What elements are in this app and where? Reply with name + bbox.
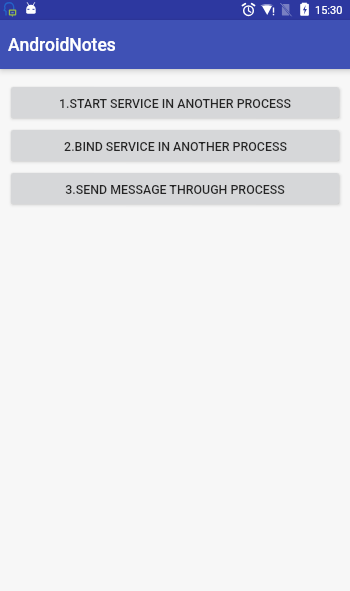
staticText: 1.START SERVICE IN ANOTHER PROCESS [59,96,291,111]
button[interactable]: 3.SEND MESSAGE THROUGH PROCESS [11,173,339,204]
staticText: 15:30 [315,4,343,17]
staticText: AndroidNotes [8,35,116,56]
button[interactable]: 2.BIND SERVICE IN ANOTHER PROCESS [11,130,339,161]
staticText: 3.SEND MESSAGE THROUGH PROCESS [65,182,285,197]
staticText: 2.BIND SERVICE IN ANOTHER PROCESS [64,139,287,154]
button[interactable]: 1.START SERVICE IN ANOTHER PROCESS [11,87,339,118]
